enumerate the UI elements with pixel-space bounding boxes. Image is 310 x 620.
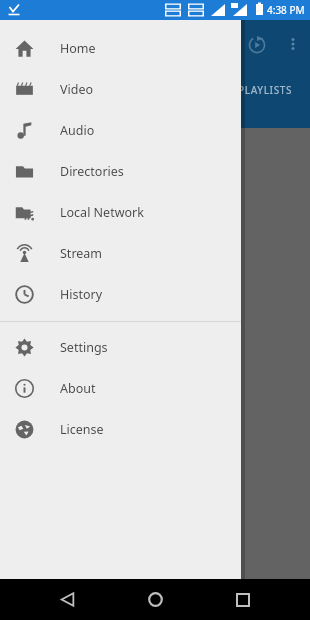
button[interactable]: Stream bbox=[0, 233, 241, 274]
staticText: PLAYLISTS bbox=[238, 83, 293, 97]
button[interactable]: Directories bbox=[0, 151, 241, 192]
staticText: Stream bbox=[60, 245, 103, 262]
staticText: Home bbox=[60, 40, 96, 57]
staticText: About bbox=[60, 380, 96, 397]
button[interactable]: About bbox=[0, 368, 241, 409]
staticText: 4:38 PM bbox=[267, 3, 305, 17]
staticText: Audio bbox=[60, 122, 95, 139]
staticText: History bbox=[60, 286, 103, 303]
button[interactable]: History bbox=[243, 31, 271, 59]
button[interactable]: History bbox=[0, 274, 241, 315]
button[interactable]: Back bbox=[46, 579, 88, 620]
staticText: Local Network bbox=[60, 204, 144, 221]
button[interactable]: Audio bbox=[0, 110, 241, 151]
button[interactable]: Local Network bbox=[0, 192, 241, 233]
staticText: Video bbox=[60, 81, 94, 98]
staticText: Directories bbox=[60, 163, 124, 180]
staticText: Settings bbox=[60, 339, 108, 356]
staticText: License bbox=[60, 421, 104, 438]
button[interactable]: Home bbox=[0, 28, 241, 69]
button[interactable]: More options bbox=[280, 31, 306, 57]
button[interactable]: Recent apps bbox=[222, 579, 264, 620]
button[interactable]: Home bbox=[134, 579, 176, 620]
button[interactable]: License bbox=[0, 409, 241, 450]
button[interactable]: Video bbox=[0, 69, 241, 110]
button[interactable]: Settings bbox=[0, 327, 241, 368]
